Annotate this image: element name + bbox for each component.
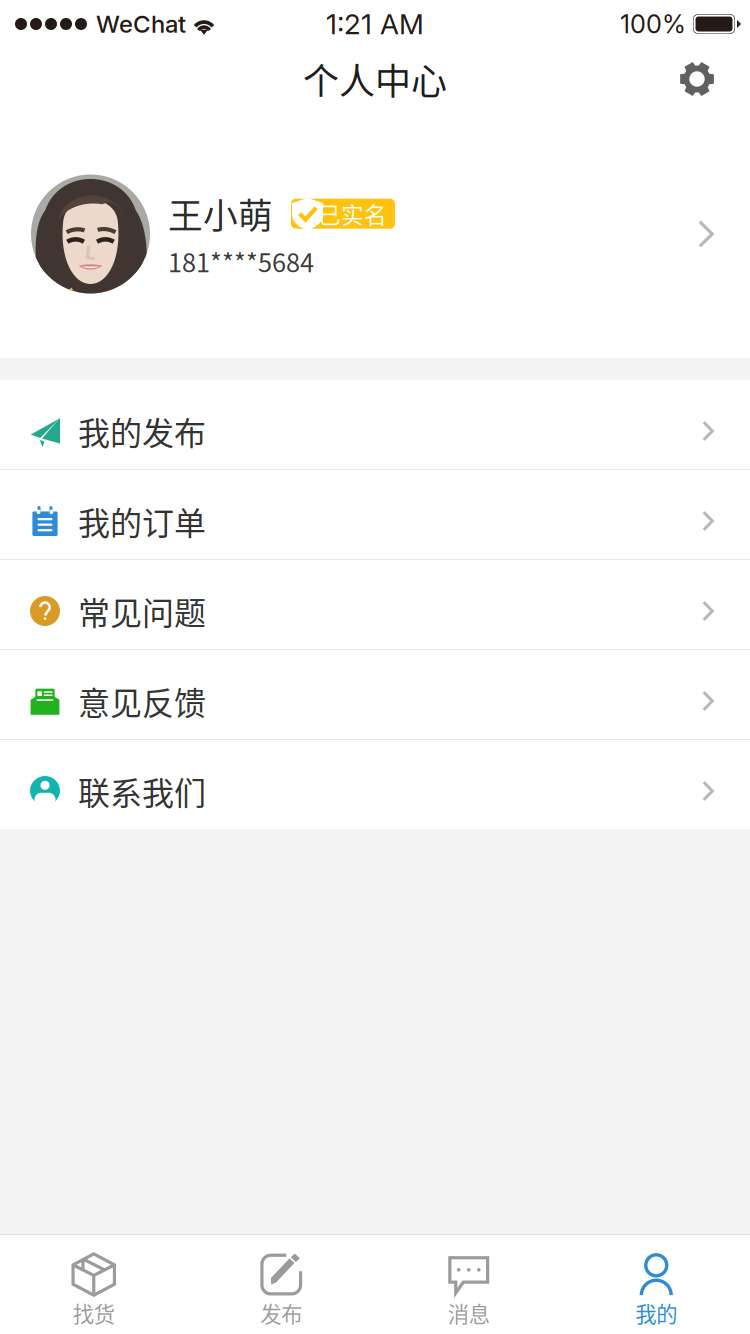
staticText: 意见反馈 [78,678,206,724]
staticText: WeChat [96,9,186,38]
button[interactable]: 发布 [187,1235,375,1334]
staticText: 我的发布 [78,408,206,454]
staticText: 已实名 [318,197,387,230]
staticText: 找货 [73,1298,115,1328]
staticText: 常见问题 [78,588,206,634]
button[interactable]: 我的 [562,1235,750,1334]
staticText: 1:21 AM [326,7,424,41]
staticText: 100% [620,9,686,39]
staticText: 个人中心 [303,53,447,105]
button[interactable]: 王小萌 [0,110,750,358]
button[interactable]: 我的发布 [0,380,750,470]
staticText: 消息 [448,1298,490,1328]
button[interactable]: 联系我们 [0,740,750,829]
button[interactable]: 意见反馈 [0,650,750,740]
button[interactable]: 我的订单 [0,470,750,560]
staticText: 王小萌 [168,189,273,239]
button[interactable]: 找货 [0,1235,187,1334]
staticText: 联系我们 [78,768,206,814]
button[interactable]: 常见问题 [0,560,750,650]
button[interactable]: 消息 [375,1235,562,1334]
staticText: 我的 [635,1298,677,1328]
button[interactable]: 设置 [661,43,750,115]
staticText: 我的订单 [78,498,206,544]
staticText: 发布 [260,1298,302,1328]
staticText: 181****5684 [168,243,314,279]
